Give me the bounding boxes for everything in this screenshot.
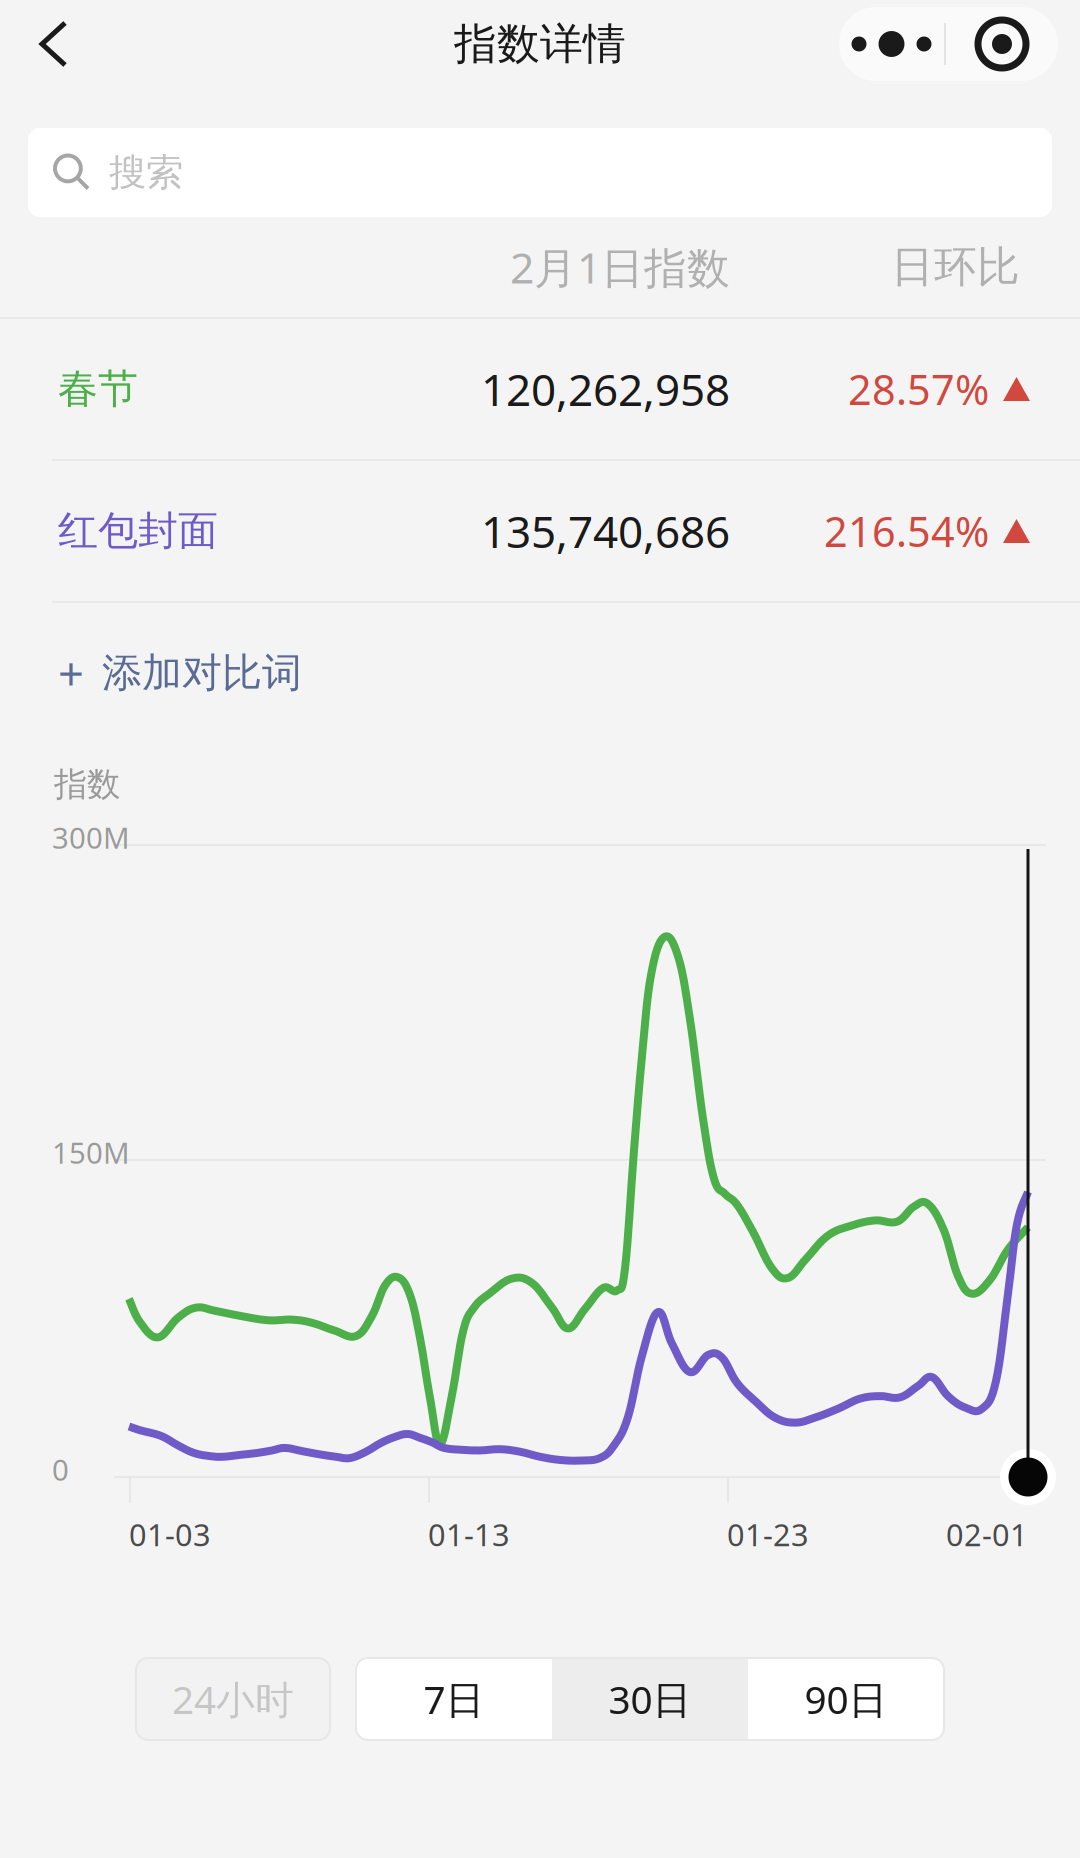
- staticText: 300M: [52, 818, 130, 857]
- staticText: 30日: [608, 1673, 691, 1725]
- staticText: 搜索: [109, 150, 183, 195]
- staticText: 2月1日指数: [510, 239, 730, 295]
- staticText: +: [58, 643, 84, 703]
- staticText: 28.57%: [848, 362, 989, 416]
- button[interactable]: 搜索: [28, 128, 1052, 217]
- staticText: 指数: [54, 764, 120, 805]
- staticText: 0: [52, 1450, 69, 1489]
- staticText: 红包封面: [58, 506, 218, 555]
- staticText: 90日: [804, 1673, 887, 1725]
- staticText: 01-13: [428, 1514, 510, 1555]
- staticText: 01-03: [129, 1514, 211, 1555]
- staticText: 150M: [52, 1133, 130, 1172]
- button[interactable]: 90日: [748, 1658, 944, 1740]
- staticText: 日环比: [891, 241, 1020, 293]
- staticText: 120,262,958: [481, 360, 730, 418]
- staticText: 02-01: [946, 1514, 1028, 1555]
- staticText: 指数详情: [454, 18, 626, 70]
- button[interactable]: +: [0, 603, 1080, 743]
- button[interactable]: 24小时: [136, 1658, 330, 1740]
- staticText: 24小时: [172, 1673, 294, 1725]
- button[interactable]: 更多: [839, 7, 944, 81]
- button[interactable]: 30日: [552, 1658, 748, 1740]
- staticText: 01-23: [727, 1514, 809, 1555]
- staticText: 春节: [58, 364, 138, 413]
- staticText: 216.54%: [824, 504, 989, 558]
- button[interactable]: 关闭小程序: [946, 7, 1058, 81]
- staticText: 135,740,686: [481, 502, 730, 560]
- button[interactable]: 7日: [356, 1658, 552, 1740]
- staticText: 7日: [423, 1673, 484, 1725]
- staticText: 添加对比词: [102, 648, 302, 697]
- button[interactable]: 返回: [0, 1, 99, 87]
